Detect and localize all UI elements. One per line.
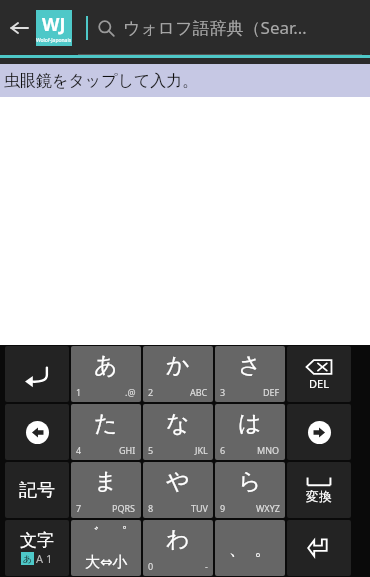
button[interactable]: 記号 <box>5 462 69 518</box>
staticText: DEL <box>309 376 329 391</box>
staticText: 記号 <box>19 479 55 502</box>
staticText: 1 <box>76 386 82 398</box>
staticText: あ <box>23 553 33 564</box>
button[interactable]: ら <box>215 462 285 518</box>
button[interactable]: Cursor left <box>5 404 69 460</box>
button[interactable]: ゛ <box>71 520 141 576</box>
staticText: 4 <box>76 444 82 456</box>
button[interactable]: Convert <box>287 462 351 518</box>
staticText: 大⇔小 <box>85 553 128 572</box>
staticText: PQRS <box>112 502 136 514</box>
button[interactable]: は <box>215 404 285 460</box>
button[interactable]: わ <box>143 520 213 576</box>
staticText: さ <box>238 351 262 380</box>
staticText: 5 <box>148 444 154 456</box>
staticText: 文字 <box>20 530 54 551</box>
staticText: ゛ <box>84 524 100 543</box>
staticText: JKL <box>195 444 208 456</box>
staticText: 3 <box>220 386 226 398</box>
staticText: ゜ <box>112 524 128 543</box>
staticText: 変換 <box>306 488 332 504</box>
button[interactable]: Search <box>95 17 117 39</box>
button[interactable]: た <box>71 404 141 460</box>
staticText: な <box>166 409 190 438</box>
staticText: 8 <box>148 502 154 514</box>
button[interactable]: Delete <box>287 346 351 402</box>
staticText: 2 <box>148 386 154 398</box>
staticText: ま <box>94 467 118 496</box>
button[interactable]: Back <box>4 13 34 43</box>
button[interactable]: Undo <box>5 346 69 402</box>
staticText: Wolof-Japonais <box>36 37 72 44</box>
staticText: あ <box>94 351 118 380</box>
button[interactable]: さ <box>215 346 285 402</box>
button[interactable]: Enter <box>287 520 351 576</box>
button[interactable]: か <box>143 346 213 402</box>
staticText: は <box>238 409 262 438</box>
button[interactable]: Wolof-Japonais logo <box>36 10 72 46</box>
staticText: 、 。 <box>229 537 272 560</box>
staticText: - <box>205 560 208 572</box>
button[interactable]: あ <box>71 346 141 402</box>
button[interactable]: な <box>143 404 213 460</box>
staticText: TUV <box>191 502 208 514</box>
staticText: WXYZ <box>256 502 280 514</box>
button[interactable]: Cursor right <box>287 404 351 460</box>
button[interactable]: 文字 <box>5 520 69 576</box>
staticText: WJ <box>42 12 66 37</box>
staticText: 虫眼鏡をタップして入力。 <box>4 71 199 91</box>
staticText: MNO <box>257 444 280 456</box>
staticText: 9 <box>220 502 226 514</box>
staticText: ら <box>238 467 262 496</box>
staticText: わ <box>166 525 190 554</box>
button[interactable]: ま <box>71 462 141 518</box>
staticText: ABC <box>190 386 208 398</box>
staticText: GHI <box>119 444 136 456</box>
button[interactable]: 、 。 <box>215 520 285 576</box>
staticText: 7 <box>76 502 82 514</box>
button[interactable]: や <box>143 462 213 518</box>
staticText: か <box>166 351 190 380</box>
staticText: や <box>166 467 190 496</box>
staticText: ウォロフ語辞典（Sear… <box>123 16 307 39</box>
staticText: 0 <box>148 560 154 572</box>
staticText: DEF <box>263 386 280 398</box>
staticText: た <box>94 409 118 438</box>
staticText: A 1 <box>36 551 53 566</box>
staticText: 6 <box>220 444 226 456</box>
staticText: .@ <box>125 386 136 398</box>
